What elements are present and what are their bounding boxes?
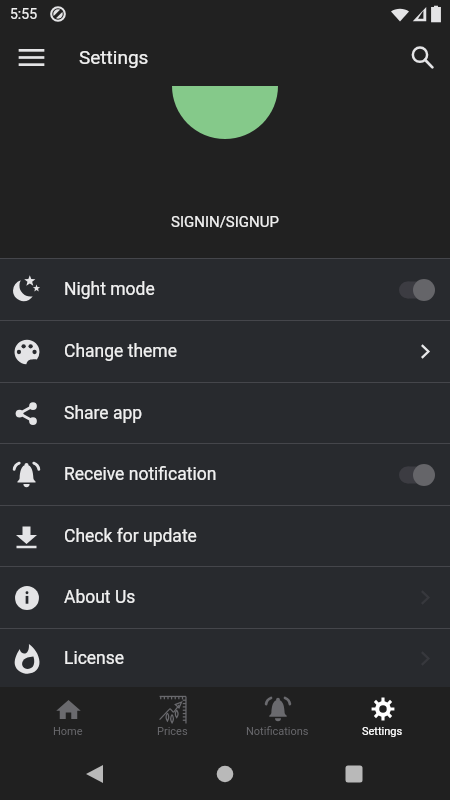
staticText: Change theme — [64, 341, 177, 362]
staticText: Home — [53, 725, 83, 738]
button[interactable]: Share app — [0, 383, 450, 443]
staticText: License — [64, 648, 125, 669]
button[interactable]: Notifications — [225, 687, 330, 745]
staticText: About Us — [64, 587, 136, 608]
button[interactable]: Search — [399, 34, 445, 80]
staticText: Settings — [362, 725, 403, 738]
button[interactable]: Change theme — [0, 321, 450, 382]
staticText: 5:55 — [10, 6, 37, 22]
button[interactable]: Menu — [8, 34, 54, 80]
button[interactable]: SIGNIN/SIGNUP — [171, 213, 279, 231]
button[interactable]: Home — [15, 687, 120, 745]
button[interactable]: Prices — [120, 687, 225, 745]
staticText: Prices — [157, 725, 188, 738]
button[interactable]: Settings — [330, 687, 435, 745]
button[interactable]: Check for update — [0, 506, 450, 566]
staticText: Receive notification — [64, 464, 217, 485]
button[interactable]: Night mode — [0, 259, 450, 320]
button[interactable]: License — [0, 629, 450, 687]
button[interactable]: Receive notification — [0, 444, 450, 505]
staticText: Settings — [79, 46, 149, 68]
staticText: Check for update — [64, 526, 197, 547]
button[interactable]: About Us — [0, 567, 450, 628]
staticText: Notifications — [246, 725, 309, 738]
staticText: Share app — [64, 403, 143, 424]
button[interactable]: Profile picture — [172, 86, 278, 139]
staticText: Night mode — [64, 279, 155, 300]
